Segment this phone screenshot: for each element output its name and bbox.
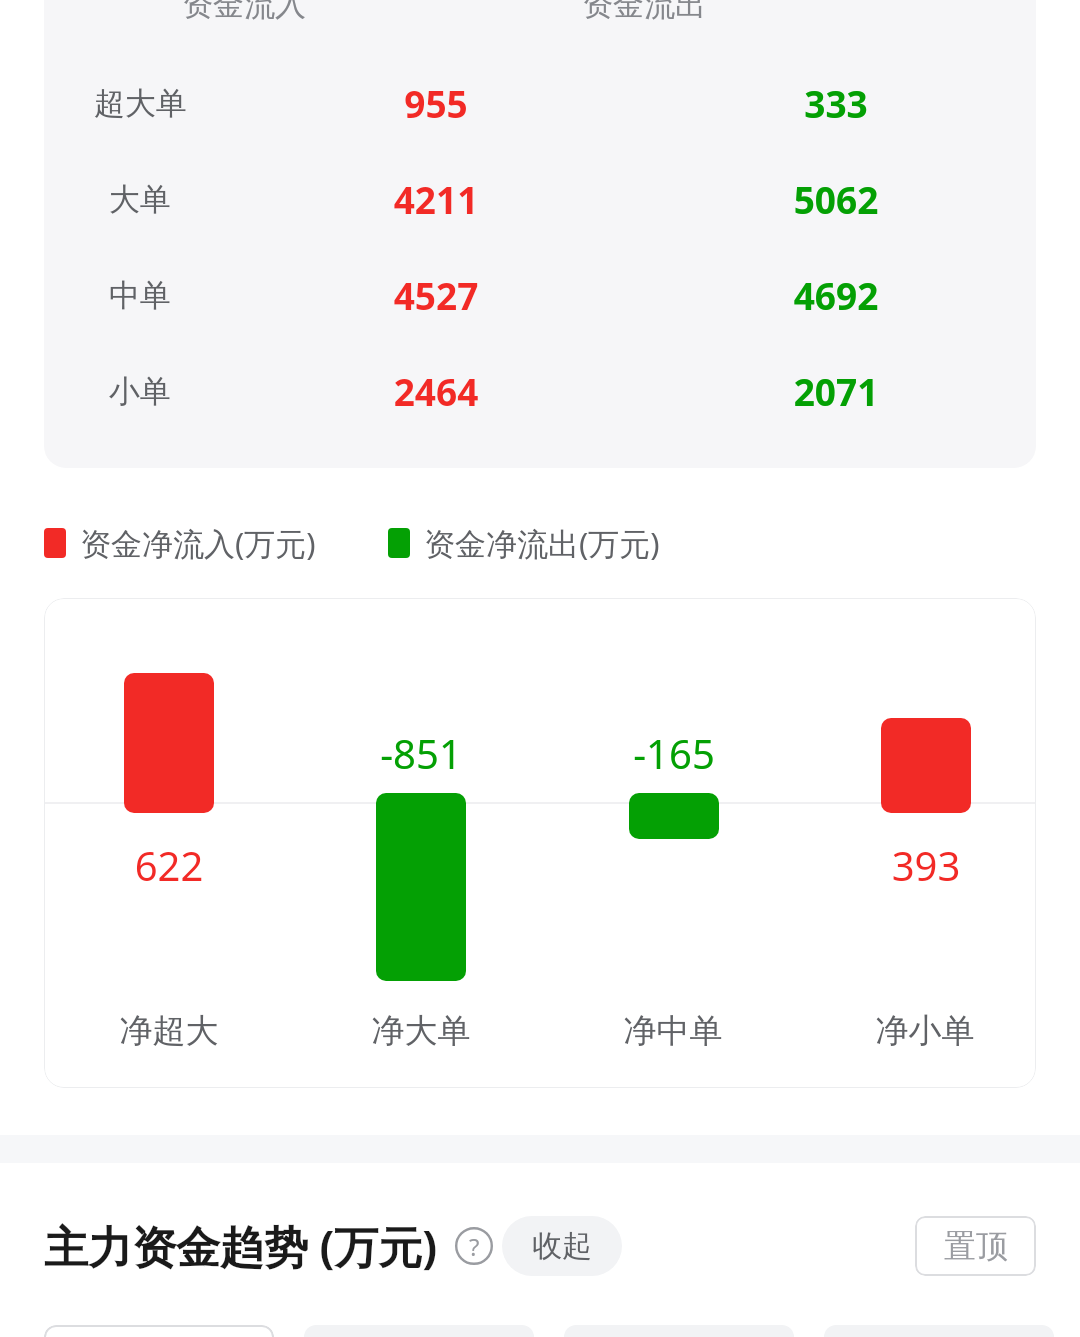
staticText: 资金流入 (44, 0, 444, 24)
staticText: 5062 (636, 174, 1036, 224)
staticText: -851 (376, 726, 466, 780)
staticText: 资金净流出(万元) (424, 522, 660, 564)
staticText: 净超大 (79, 1010, 259, 1052)
button[interactable]: 资金流入 (44, 0, 1036, 468)
staticText: 4527 (236, 270, 636, 320)
staticText: 622 (124, 838, 214, 892)
button[interactable]: 收起 (502, 1216, 622, 1276)
staticText: 超大单 (94, 84, 187, 123)
staticText: 净小单 (835, 1010, 1015, 1052)
staticText: -165 (629, 726, 719, 780)
staticText: 955 (236, 78, 636, 128)
staticText: 4692 (636, 270, 1036, 320)
staticText: 置顶 (944, 1226, 1008, 1266)
staticText: 大单 (109, 180, 171, 219)
staticText: 净大单 (331, 1010, 511, 1052)
staticText: 333 (636, 78, 1036, 128)
staticText: 4211 (236, 174, 636, 224)
staticText: ? (469, 1230, 480, 1263)
staticText: 393 (881, 838, 971, 892)
staticText: 资金净流入(万元) (80, 522, 316, 564)
staticText: 净中单 (583, 1010, 763, 1052)
staticText: 中单 (109, 276, 171, 315)
staticText: 主力资金趋势 (万元) (44, 1216, 438, 1276)
button[interactable] (44, 1325, 274, 1337)
button[interactable]: 置顶 (915, 1216, 1036, 1276)
staticText: 收起 (532, 1227, 592, 1265)
staticText: 资金流出 (444, 0, 844, 24)
staticText: 小单 (109, 372, 171, 411)
staticText: 2071 (636, 366, 1036, 416)
staticText: 2464 (236, 366, 636, 416)
button[interactable]: 帮助 (454, 1226, 494, 1266)
button[interactable]: 622 (44, 598, 1036, 1088)
